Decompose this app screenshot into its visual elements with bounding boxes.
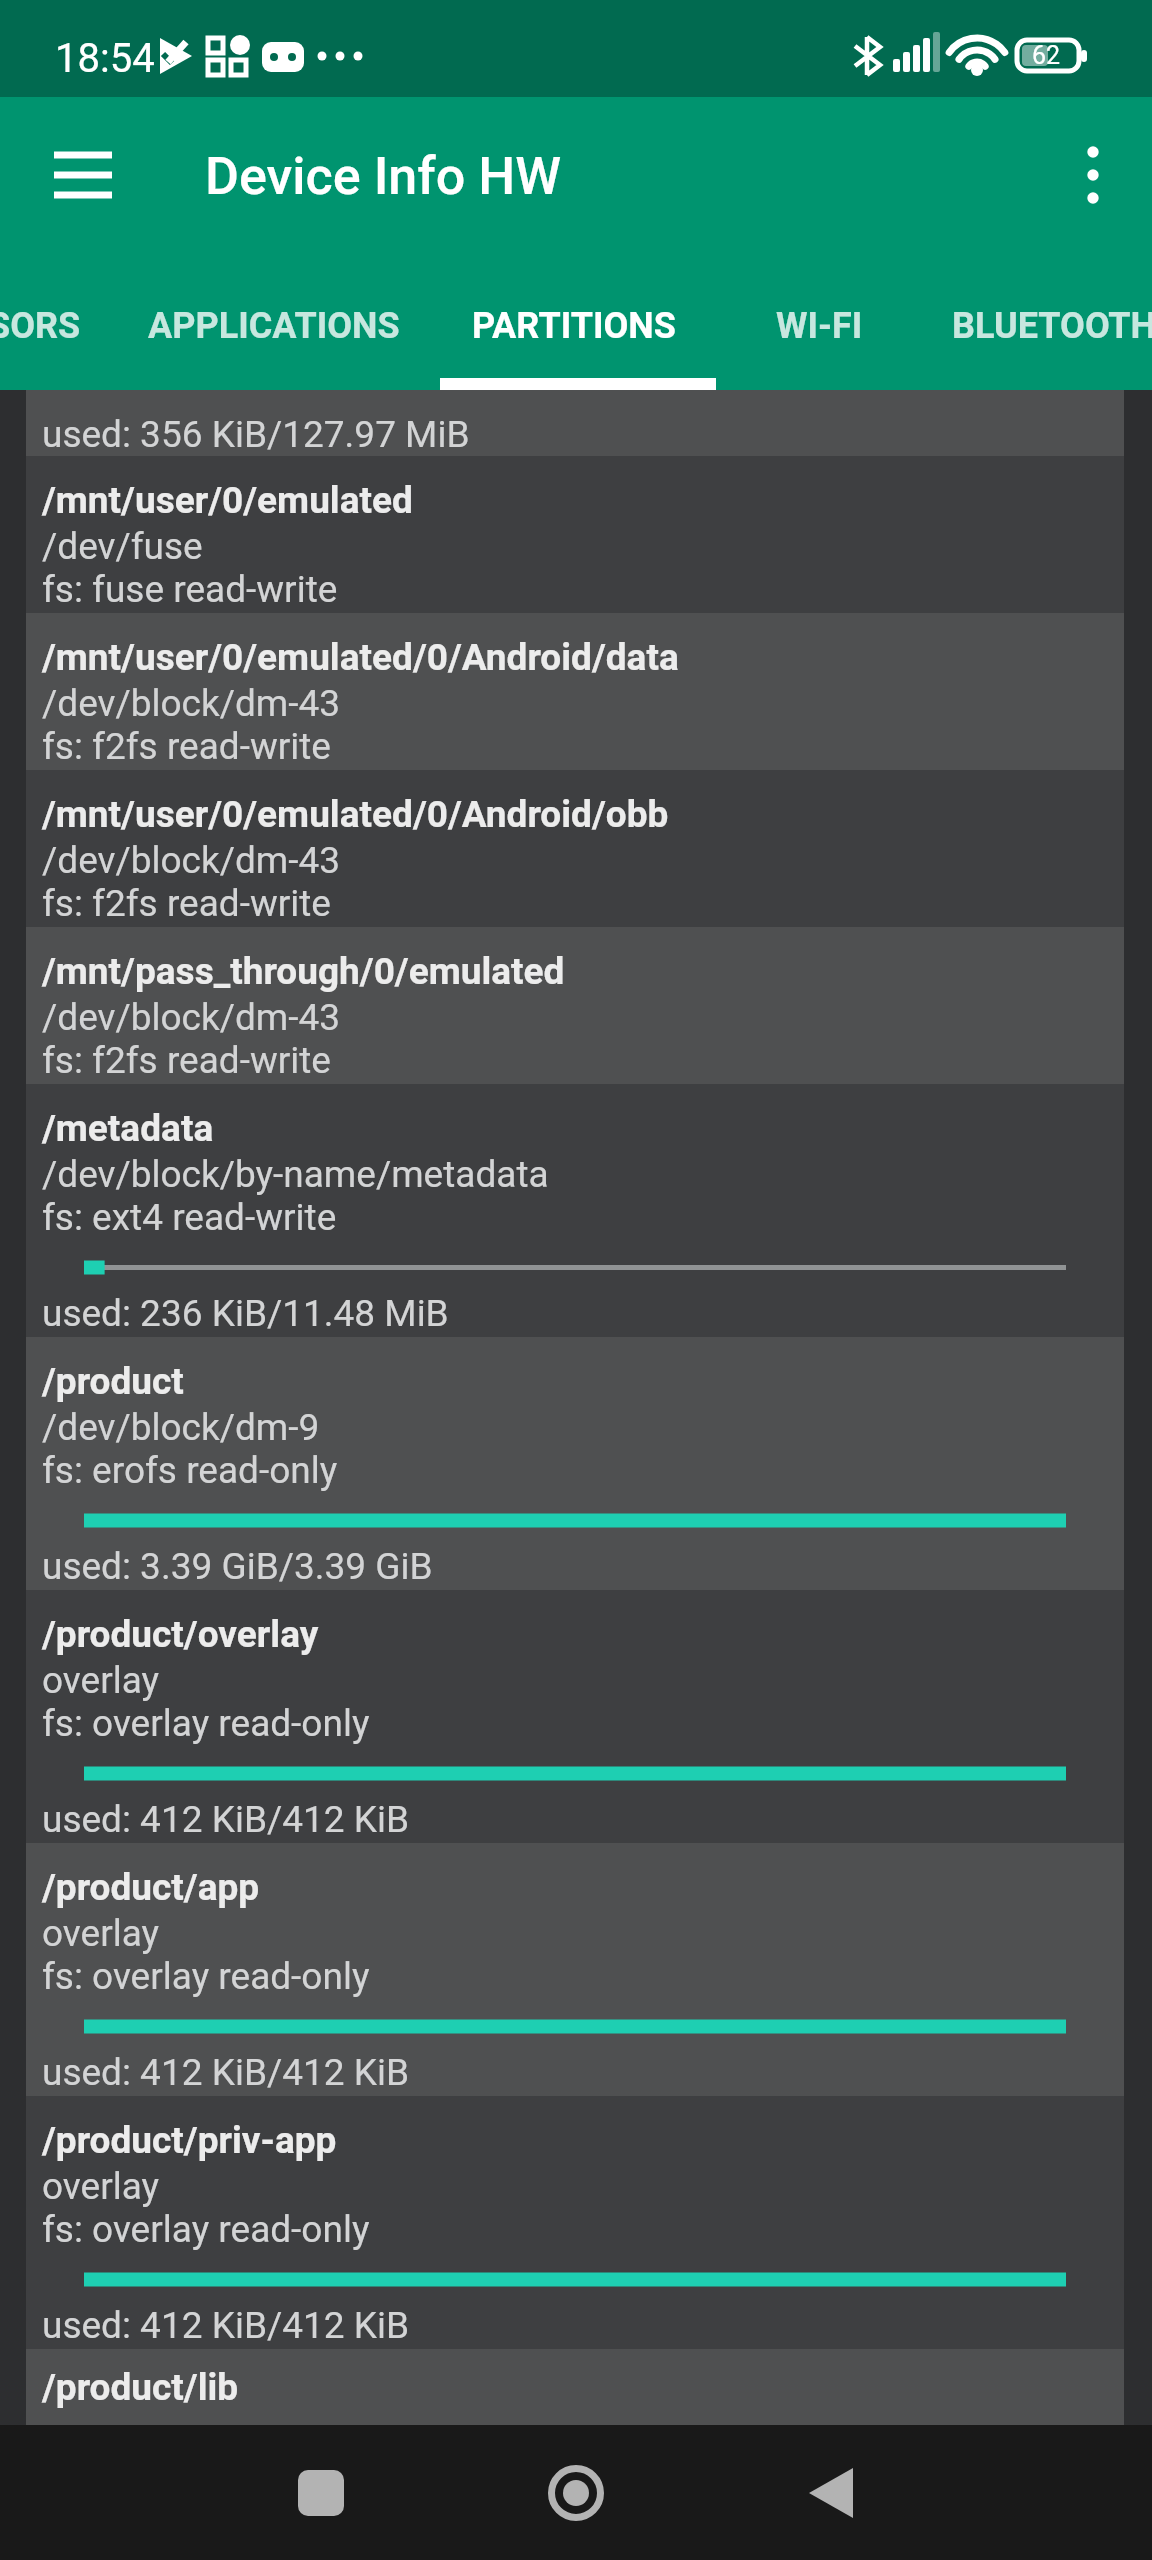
staticText: Device Info HW — [205, 146, 562, 207]
staticText: 62 — [1032, 41, 1061, 70]
button[interactable]: /product — [26, 1337, 1124, 1590]
staticText: overlay — [42, 2165, 160, 2208]
staticText: /product/lib — [42, 2366, 239, 2409]
staticText: /product/app — [42, 1866, 260, 1909]
staticText: /dev/block/by-name/metadata — [42, 1153, 549, 1196]
button[interactable]: /product/priv-app — [26, 2096, 1124, 2349]
button[interactable]: /mnt/user/0/emulated/0/Android/data — [26, 613, 1124, 770]
button[interactable] — [38, 130, 128, 220]
staticText: used: 236 KiB/11.48 MiB — [42, 1292, 449, 1335]
staticText: /mnt/user/0/emulated/0/Android/obb — [42, 793, 669, 836]
staticText: fs: f2fs read-write — [42, 1039, 331, 1082]
button[interactable] — [746, 2425, 916, 2560]
button[interactable]: /metadata — [26, 1084, 1124, 1337]
staticText: fs: overlay read-only — [42, 2208, 370, 2251]
button[interactable]: /product/app — [26, 1843, 1124, 2096]
staticText: used: 3.39 GiB/3.39 GiB — [42, 1545, 433, 1588]
button[interactable]: used: 356 KiB/127.97 MiB — [26, 390, 1124, 456]
button[interactable]: /mnt/user/0/emulated — [26, 456, 1124, 613]
staticText: fs: erofs read-only — [42, 1449, 338, 1492]
staticText: used: 412 KiB/412 KiB — [42, 2304, 410, 2347]
staticText: fs: overlay read-only — [42, 1702, 370, 1745]
staticText: /dev/fuse — [42, 525, 203, 568]
button[interactable]: /product/overlay — [26, 1590, 1124, 1843]
staticText: SORS — [0, 305, 81, 347]
button[interactable]: /mnt/pass_through/0/emulated — [26, 927, 1124, 1084]
staticText: BLUETOOTH — [952, 305, 1152, 347]
staticText: /dev/block/dm-9 — [42, 1406, 320, 1449]
staticText: used: 412 KiB/412 KiB — [42, 2051, 410, 2094]
button[interactable]: WI-FI — [746, 280, 892, 390]
staticText: /metadata — [42, 1107, 214, 1150]
staticText: /product — [42, 1360, 184, 1403]
button[interactable]: SORS — [0, 280, 110, 390]
staticText: 18:54 — [55, 35, 155, 82]
staticText: PARTITIONS — [472, 305, 676, 347]
button[interactable]: APPLICATIONS — [120, 280, 430, 390]
staticText: /product/overlay — [42, 1613, 319, 1656]
staticText: /dev/block/dm-43 — [42, 839, 341, 882]
staticText: WI-FI — [776, 305, 863, 347]
staticText: fs: f2fs read-write — [42, 882, 331, 925]
staticText: /product/priv-app — [42, 2119, 337, 2162]
button[interactable] — [1050, 132, 1135, 217]
button[interactable] — [491, 2425, 661, 2560]
staticText: /mnt/user/0/emulated — [42, 479, 413, 522]
staticText: fs: overlay read-only — [42, 1955, 370, 1998]
staticText: /mnt/user/0/emulated/0/Android/data — [42, 636, 679, 679]
staticText: used: 356 KiB/127.97 MiB — [42, 413, 470, 456]
staticText: /dev/block/dm-43 — [42, 682, 341, 725]
button[interactable]: PARTITIONS — [440, 280, 716, 390]
button[interactable]: BLUETOOTH — [922, 280, 1152, 390]
staticText: APPLICATIONS — [148, 305, 400, 347]
staticText: /dev/block/dm-43 — [42, 996, 341, 1039]
staticText: overlay — [42, 1912, 160, 1955]
staticText: fs: fuse read-write — [42, 568, 338, 611]
staticText: fs: ext4 read-write — [42, 1196, 337, 1239]
staticText: fs: f2fs read-write — [42, 725, 331, 768]
button[interactable] — [236, 2425, 406, 2560]
staticText: used: 412 KiB/412 KiB — [42, 1798, 410, 1841]
staticText: /mnt/pass_through/0/emulated — [42, 950, 565, 993]
button[interactable]: /product/lib — [26, 2349, 1124, 2425]
button[interactable]: /mnt/user/0/emulated/0/Android/obb — [26, 770, 1124, 927]
staticText: overlay — [42, 1659, 160, 1702]
